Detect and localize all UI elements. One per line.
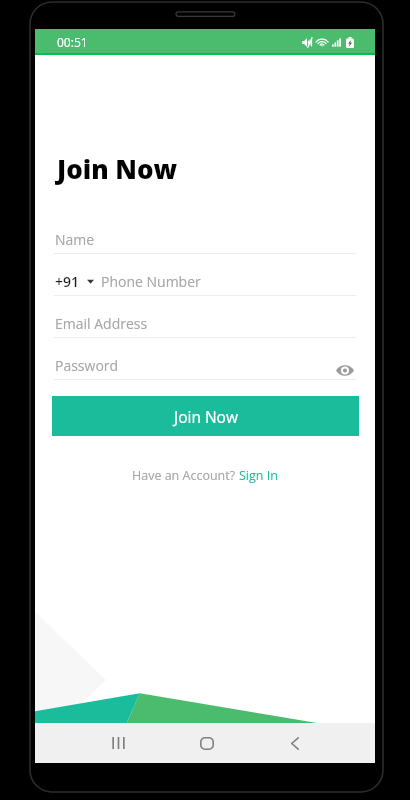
staticText: Have an Account? — [132, 467, 239, 484]
staticText: Name — [55, 230, 95, 249]
button[interactable]: Join Now — [52, 396, 359, 436]
staticText: Email Address — [55, 314, 148, 333]
staticText: Join Now — [174, 406, 238, 427]
button[interactable]: Show password — [333, 358, 357, 382]
staticText: Password — [55, 356, 119, 375]
button[interactable]: Back — [253, 723, 336, 763]
staticText: 00:51 — [57, 34, 88, 50]
staticText: Phone Number — [101, 272, 201, 291]
button[interactable]: Home — [165, 723, 248, 763]
staticText: Join Now — [57, 151, 178, 186]
button[interactable]: Recent apps — [77, 723, 160, 763]
button[interactable]: Sign In — [239, 467, 278, 484]
staticText: +91 — [55, 272, 80, 291]
